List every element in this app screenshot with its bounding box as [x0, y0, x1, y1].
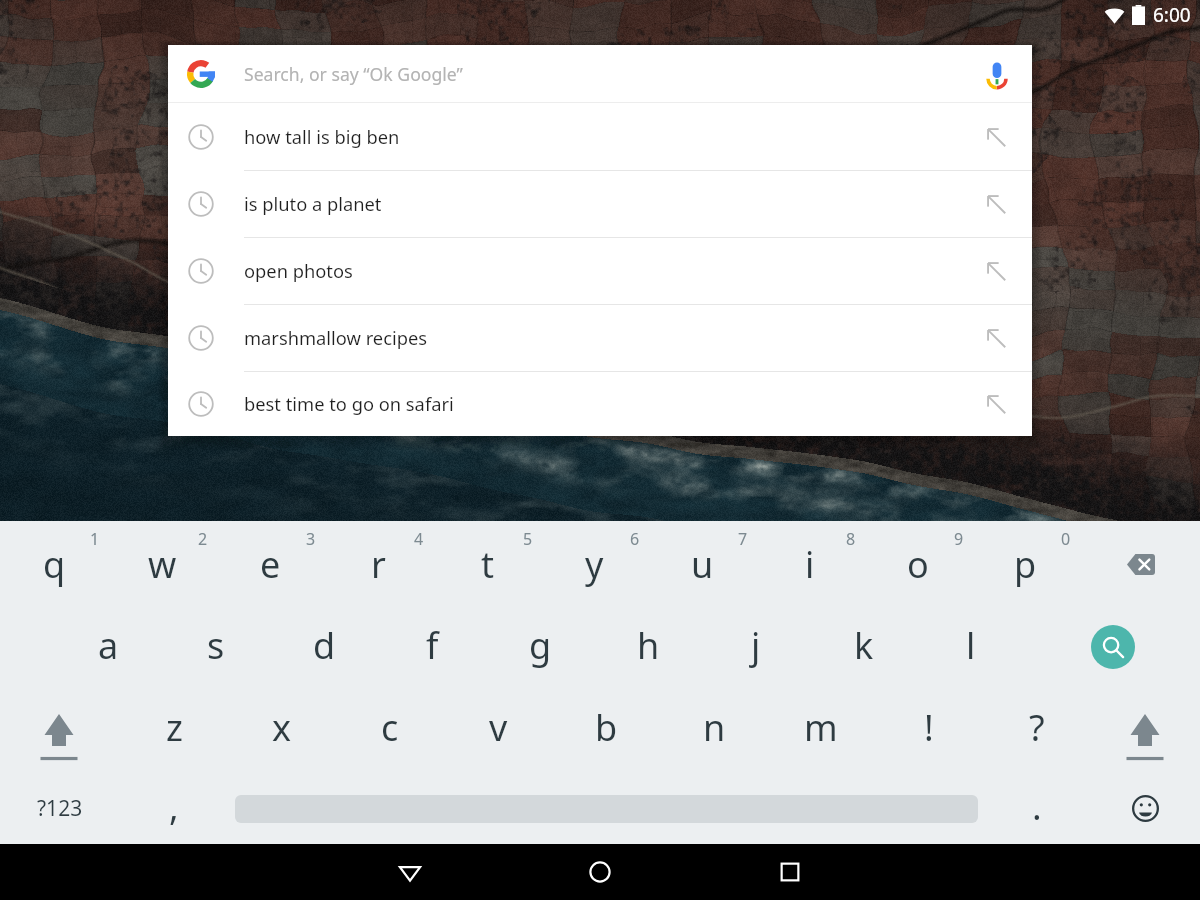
button[interactable]: Search, or say “Ok Google”	[168, 45, 1032, 102]
button[interactable]: m	[767, 693, 875, 765]
staticText: 6	[630, 528, 640, 550]
button[interactable]: Insert query	[970, 178, 1022, 230]
button[interactable]: f	[378, 611, 486, 683]
button[interactable]: d	[270, 611, 378, 683]
button[interactable]: x	[228, 693, 336, 765]
button[interactable]: ?	[983, 693, 1091, 765]
button[interactable]: 8	[756, 530, 864, 602]
staticText: ,	[169, 782, 179, 831]
button[interactable]: 2	[108, 530, 216, 602]
button[interactable]: a	[54, 611, 162, 683]
staticText: how tall is big ben	[244, 124, 400, 149]
staticText: r	[371, 540, 386, 589]
staticText: i	[805, 540, 815, 589]
button[interactable]: c	[336, 693, 444, 765]
staticText: l	[966, 621, 976, 670]
button[interactable]: l	[917, 611, 1025, 683]
staticText: 2	[198, 528, 208, 550]
staticText: s	[207, 621, 225, 670]
staticText: 8	[846, 528, 856, 550]
staticText: q	[43, 540, 66, 589]
button[interactable]: g	[486, 611, 594, 683]
button[interactable]: b	[552, 693, 660, 765]
button[interactable]: 5	[433, 530, 541, 602]
staticText: x	[272, 703, 292, 752]
button[interactable]: s	[162, 611, 270, 683]
button[interactable]: 4	[324, 530, 432, 602]
button[interactable]: .	[983, 775, 1091, 847]
staticText: open photos	[244, 258, 353, 283]
button[interactable]: Insert query	[970, 245, 1022, 297]
staticText: a	[98, 621, 119, 670]
button[interactable]: 1	[0, 530, 108, 602]
staticText: z	[166, 703, 183, 752]
button[interactable]: best time to go on safari	[168, 371, 1032, 436]
staticText: is pluto a planet	[244, 191, 382, 216]
staticText: n	[703, 703, 726, 752]
staticText: y	[585, 540, 604, 589]
staticText: best time to go on safari	[244, 391, 454, 416]
staticText: 6:00	[1153, 2, 1191, 28]
staticText: t	[481, 540, 494, 589]
staticText: f	[426, 621, 439, 670]
staticText: 4	[414, 528, 424, 550]
staticText: j	[751, 621, 761, 670]
button[interactable]: Search	[1067, 617, 1159, 677]
button[interactable]: n	[660, 693, 768, 765]
button[interactable]: 9	[864, 530, 972, 602]
button[interactable]: 6	[540, 530, 648, 602]
button[interactable]: h	[594, 611, 702, 683]
staticText: p	[1014, 540, 1037, 589]
staticText: m	[804, 703, 838, 752]
button[interactable]: Recent apps	[750, 844, 830, 900]
button[interactable]: 0	[971, 530, 1079, 602]
staticText: 9	[954, 528, 964, 550]
button[interactable]: is pluto a planet	[168, 170, 1032, 237]
staticText: 0	[1061, 528, 1071, 550]
staticText: marshmallow recipes	[244, 325, 428, 350]
button[interactable]: z	[120, 693, 228, 765]
button[interactable]: marshmallow recipes	[168, 304, 1032, 371]
staticText: e	[260, 540, 281, 589]
button[interactable]: how tall is big ben	[168, 103, 1032, 170]
staticText: v	[489, 703, 508, 752]
button[interactable]: ,	[120, 775, 228, 847]
button[interactable]: Voice search	[970, 47, 1024, 101]
button[interactable]: ?123	[10, 782, 110, 834]
button[interactable]: Insert query	[970, 111, 1022, 163]
staticText: w	[148, 540, 177, 589]
staticText: b	[595, 703, 618, 752]
staticText: d	[313, 621, 336, 670]
staticText: h	[637, 621, 660, 670]
staticText: Search, or say “Ok Google”	[244, 62, 463, 86]
button[interactable]: Backspace	[1095, 536, 1187, 596]
staticText: g	[529, 621, 552, 670]
staticText: u	[691, 540, 714, 589]
button[interactable]: j	[702, 611, 810, 683]
staticText: !	[924, 703, 934, 752]
button[interactable]: 3	[216, 530, 324, 602]
button[interactable]: open photos	[168, 237, 1032, 304]
button[interactable]: v	[444, 693, 552, 765]
button[interactable]: Emoji	[1099, 778, 1191, 838]
button[interactable]: !	[875, 693, 983, 765]
button[interactable]: Shift	[1099, 699, 1191, 759]
button[interactable]: Home	[560, 844, 640, 900]
staticText: 1	[90, 528, 100, 550]
button[interactable]: Insert query	[970, 312, 1022, 364]
staticText: 3	[306, 528, 316, 550]
staticText: .	[1032, 782, 1042, 831]
button[interactable]: k	[810, 611, 918, 683]
staticText: 7	[738, 528, 748, 550]
button[interactable]: Shift	[13, 699, 105, 759]
staticText: ?	[1029, 703, 1045, 752]
button[interactable]: Space	[200, 783, 1013, 835]
staticText: ?123	[37, 794, 83, 823]
staticText: k	[854, 621, 874, 670]
button[interactable]: 7	[648, 530, 756, 602]
staticText: 5	[523, 528, 533, 550]
button[interactable]: Back	[370, 844, 450, 900]
staticText: c	[381, 703, 399, 752]
staticText: o	[907, 540, 929, 589]
button[interactable]: Insert query	[970, 378, 1022, 430]
